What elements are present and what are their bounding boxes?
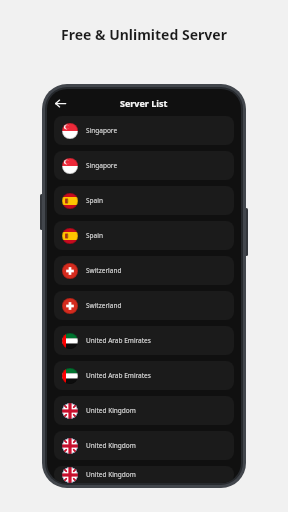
button[interactable]: Spain bbox=[54, 186, 234, 215]
button[interactable]: Back bbox=[51, 94, 69, 112]
staticText: Free & Unlimited Server bbox=[61, 25, 227, 44]
button[interactable]: Switzerland bbox=[54, 291, 234, 320]
button[interactable]: United Arab Emirates bbox=[54, 326, 234, 355]
staticText: Spain bbox=[86, 231, 103, 240]
button[interactable]: United Kingdom bbox=[54, 396, 234, 425]
staticText: Singapore bbox=[86, 126, 118, 135]
button[interactable]: United Kingdom bbox=[54, 466, 234, 483]
staticText: United Kingdom bbox=[86, 406, 136, 415]
button[interactable]: Spain bbox=[54, 221, 234, 250]
button[interactable]: Singapore bbox=[54, 116, 234, 145]
staticText: United Kingdom bbox=[86, 470, 136, 479]
button[interactable]: Singapore bbox=[54, 151, 234, 180]
staticText: Singapore bbox=[86, 161, 118, 170]
staticText: Server List bbox=[120, 97, 168, 109]
staticText: Switzerland bbox=[86, 301, 122, 310]
staticText: United Kingdom bbox=[86, 441, 136, 450]
button[interactable]: United Arab Emirates bbox=[54, 361, 234, 390]
button[interactable]: Switzerland bbox=[54, 256, 234, 285]
staticText: United Arab Emirates bbox=[86, 371, 151, 380]
staticText: United Arab Emirates bbox=[86, 336, 151, 345]
staticText: Switzerland bbox=[86, 266, 122, 275]
button[interactable]: United Kingdom bbox=[54, 431, 234, 460]
staticText: Spain bbox=[86, 196, 103, 205]
